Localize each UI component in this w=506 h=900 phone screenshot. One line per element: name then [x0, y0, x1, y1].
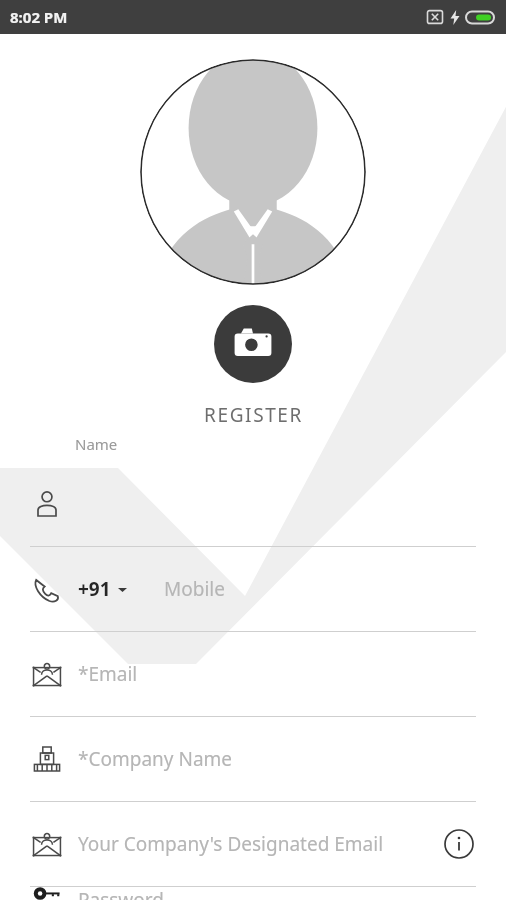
button[interactable]: Your Company's Designated Email	[0, 802, 506, 887]
button[interactable]: Password	[0, 887, 506, 900]
staticText: Mobile	[164, 576, 225, 602]
staticText: Name	[75, 434, 118, 454]
staticText: 8:02 PM	[10, 7, 68, 27]
button[interactable]: Take photo	[214, 305, 292, 383]
button[interactable]: Information	[442, 827, 476, 861]
staticText: Your Company's Designated Email	[78, 831, 384, 857]
button[interactable]	[0, 462, 506, 547]
staticText: *Email	[78, 661, 138, 687]
button[interactable]: *Email	[0, 632, 506, 717]
button[interactable]: +91	[0, 547, 506, 632]
button[interactable]: +91	[78, 576, 127, 602]
button[interactable]: *Company Name	[0, 717, 506, 802]
staticText: REGISTER	[204, 402, 303, 428]
button[interactable]: Profile photo	[140, 59, 366, 285]
staticText: Password	[78, 887, 164, 900]
staticText: *Company Name	[78, 746, 233, 772]
staticText: +91	[78, 576, 111, 602]
